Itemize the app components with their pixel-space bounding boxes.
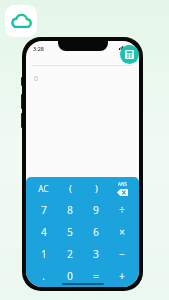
button[interactable]: .	[30, 265, 57, 287]
staticText: AC	[38, 183, 49, 194]
staticText: (	[69, 182, 72, 194]
button[interactable]: 2	[57, 243, 83, 265]
button[interactable]: 4	[30, 221, 57, 243]
button[interactable]: Open calculator	[120, 45, 139, 64]
button[interactable]: 6	[83, 221, 109, 243]
button[interactable]: 5	[57, 221, 83, 243]
button[interactable]: 8	[57, 199, 83, 221]
button[interactable]: −	[109, 243, 135, 265]
button[interactable]: (	[57, 177, 83, 199]
button[interactable]: Answer and backspace	[109, 177, 135, 199]
staticText: 2	[67, 247, 73, 261]
button[interactable]: 0	[57, 265, 83, 287]
staticText: 1	[41, 247, 47, 261]
button[interactable]: +	[109, 265, 135, 287]
staticText: 8	[67, 203, 73, 217]
staticText: +	[119, 269, 125, 283]
staticText: 4	[41, 225, 47, 239]
button[interactable]: 9	[83, 199, 109, 221]
staticText: )	[95, 182, 98, 194]
staticText: 3:28	[33, 45, 44, 52]
staticText: −	[119, 247, 125, 261]
staticText: =	[93, 269, 99, 283]
staticText: 0	[34, 74, 39, 84]
button[interactable]: 7	[30, 199, 57, 221]
button[interactable]: =	[83, 265, 109, 287]
staticText: 5	[67, 225, 73, 239]
button[interactable]: Cloud app icon	[5, 5, 37, 37]
staticText: 0	[67, 269, 73, 283]
staticText: 3	[93, 247, 99, 261]
staticText: .	[42, 269, 45, 283]
button[interactable]: 3	[83, 243, 109, 265]
staticText: 6	[93, 225, 99, 239]
button[interactable]: )	[83, 177, 109, 199]
button[interactable]: ÷	[109, 199, 135, 221]
staticText: 9	[93, 203, 99, 217]
staticText: ×	[119, 225, 125, 239]
button[interactable]: AC	[30, 177, 57, 199]
staticText: 7	[41, 203, 47, 217]
staticText: ÷	[119, 203, 125, 217]
staticText: ANS	[118, 181, 127, 187]
button[interactable]: 1	[30, 243, 57, 265]
button[interactable]: ×	[109, 221, 135, 243]
